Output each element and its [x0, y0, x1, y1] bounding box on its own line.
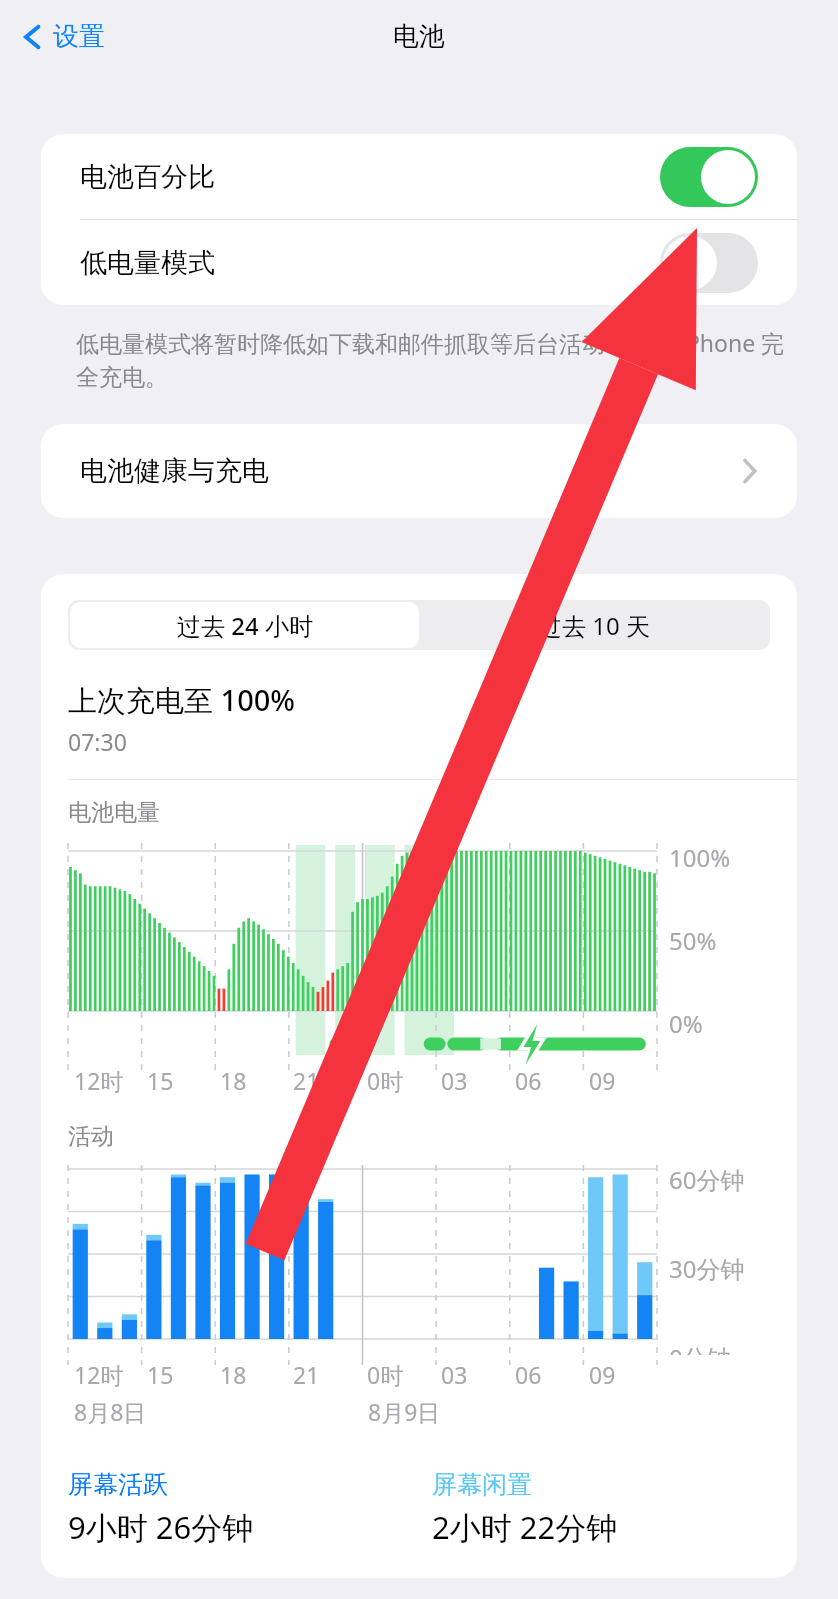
- staticText: 09: [589, 1065, 616, 1096]
- staticText: 0%: [669, 1007, 703, 1040]
- staticText: 电池电量: [68, 798, 160, 827]
- staticText: 屏幕活跃: [68, 1469, 168, 1500]
- staticText: 活动: [68, 1122, 114, 1151]
- staticText: 低电量模式将暂时降低如下载和邮件抓取等后台活动，直至 iPhone 完全充电。: [76, 327, 788, 391]
- button[interactable]: 电池百分比: [41, 134, 797, 219]
- staticText: 18: [220, 1359, 247, 1390]
- staticText: 15: [147, 1065, 174, 1096]
- staticText: 0时: [367, 1065, 404, 1096]
- staticText: 03: [441, 1065, 468, 1096]
- staticText: 50%: [669, 924, 717, 957]
- staticText: 9小时 26分钟: [68, 1506, 254, 1548]
- staticText: 设置: [53, 20, 105, 53]
- button[interactable]: 过去 10 天: [419, 602, 768, 648]
- staticText: 15: [147, 1359, 174, 1390]
- staticText: 8月8日: [74, 1396, 147, 1427]
- staticText: 09: [589, 1359, 616, 1390]
- staticText: 18: [220, 1065, 247, 1096]
- button[interactable]: 电池健康与充电: [41, 424, 797, 518]
- button[interactable]: 过去 24 小时: [70, 602, 419, 648]
- staticText: 21: [293, 1065, 320, 1096]
- staticText: 30分钟: [669, 1252, 745, 1285]
- staticText: 过去 10 天: [538, 609, 650, 642]
- staticText: 07:30: [68, 726, 127, 757]
- button[interactable]: Off: [660, 233, 758, 293]
- staticText: 8月9日: [368, 1396, 441, 1427]
- staticText: 60分钟: [669, 1163, 745, 1196]
- staticText: 电池健康与充电: [80, 454, 269, 488]
- staticText: 06: [515, 1359, 542, 1390]
- staticText: 电池百分比: [80, 160, 215, 194]
- staticText: 0分钟: [669, 1341, 731, 1355]
- staticText: 电池: [393, 20, 445, 53]
- staticText: 03: [441, 1359, 468, 1390]
- staticText: 屏幕闲置: [432, 1469, 532, 1500]
- staticText: 上次充电至 100%: [68, 680, 296, 720]
- staticText: 21: [293, 1359, 320, 1390]
- staticText: 2小时 22分钟: [432, 1506, 618, 1548]
- staticText: 12时: [74, 1065, 124, 1096]
- staticText: 06: [515, 1065, 542, 1096]
- staticText: 0时: [367, 1359, 404, 1390]
- staticText: 100%: [669, 841, 731, 874]
- staticText: 低电量模式: [80, 246, 215, 280]
- button[interactable]: 设置: [14, 14, 113, 59]
- staticText: 过去 24 小时: [177, 609, 313, 642]
- button[interactable]: 低电量模式: [41, 220, 797, 305]
- staticText: 12时: [74, 1359, 124, 1390]
- button[interactable]: On: [660, 147, 758, 207]
